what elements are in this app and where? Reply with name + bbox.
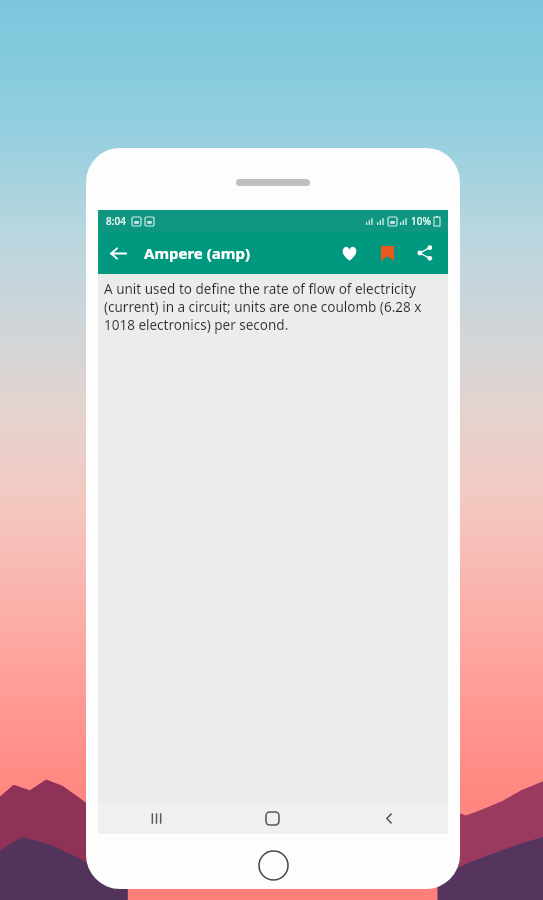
button[interactable]: Home: [214, 802, 331, 834]
button[interactable]: Home button: [258, 850, 289, 881]
staticText: 10%: [411, 214, 431, 228]
button[interactable]: Recent apps: [98, 802, 214, 834]
button[interactable]: Favorite: [330, 234, 368, 272]
staticText: A unit used to define the rate of flow o…: [104, 280, 438, 334]
button[interactable]: Back: [98, 233, 138, 273]
staticText: 8:04: [106, 214, 126, 228]
staticText: Ampere (amp): [144, 243, 250, 263]
button[interactable]: Share: [406, 234, 444, 272]
button[interactable]: Back: [331, 802, 448, 834]
button[interactable]: Bookmark: [368, 234, 406, 272]
